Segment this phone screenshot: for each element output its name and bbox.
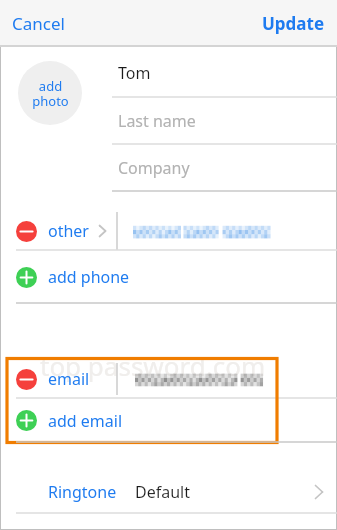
button[interactable]: Add email xyxy=(0,399,337,442)
staticText: other xyxy=(48,220,89,242)
staticText: email xyxy=(48,368,90,390)
other: Add email xyxy=(16,410,37,431)
button[interactable]: Remove email xyxy=(0,360,337,398)
button[interactable]: Last name xyxy=(112,98,337,144)
staticText: Cancel xyxy=(12,12,65,35)
button[interactable]: add photo xyxy=(18,61,82,125)
other: Add phone xyxy=(16,267,37,288)
staticText: add phone xyxy=(48,266,130,288)
button[interactable]: Company xyxy=(112,145,337,191)
staticText: ill xyxy=(28,74,52,115)
button[interactable]: Remove phone xyxy=(0,212,337,250)
staticText: top password.com xyxy=(40,348,266,383)
button[interactable]: Cancel xyxy=(8,6,69,41)
staticText: add photo xyxy=(32,77,69,110)
button[interactable]: Tom xyxy=(112,48,337,97)
staticText: Tom xyxy=(118,62,151,84)
staticText: Default xyxy=(135,481,190,503)
button[interactable]: Ringtone xyxy=(0,471,337,513)
staticText: Company xyxy=(118,157,190,179)
staticText: Update xyxy=(262,12,325,35)
button[interactable]: Add phone xyxy=(0,251,337,303)
staticText: add email xyxy=(48,410,123,432)
other: Remove email xyxy=(16,369,37,390)
staticText: Ringtone xyxy=(48,481,117,503)
button[interactable]: Update xyxy=(258,6,329,41)
staticText: Last name xyxy=(118,110,196,132)
other: Remove phone xyxy=(16,221,37,242)
